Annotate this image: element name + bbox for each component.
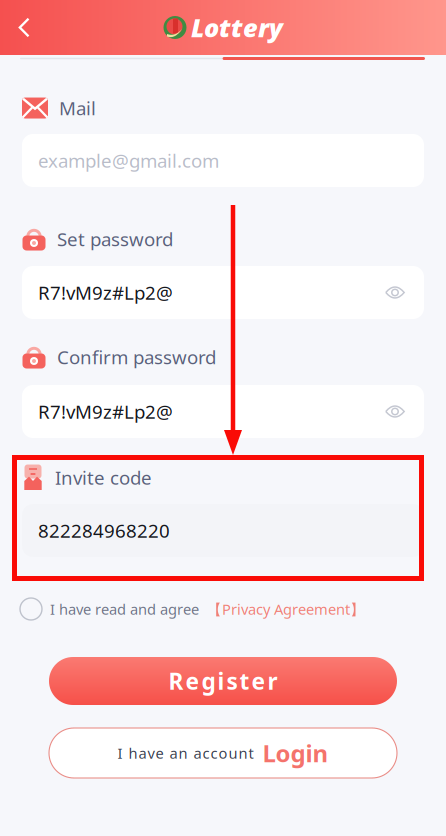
button[interactable]: I h a v e a n a c c o u n t	[0, 728, 446, 778]
button[interactable]: Show password	[380, 280, 410, 305]
staticText: R e g i s t e r	[168, 666, 277, 696]
staticText: R7!vM9z#Lp2@	[38, 399, 173, 424]
staticText: example@gmail.com	[38, 148, 219, 173]
staticText: Invite code	[55, 465, 152, 490]
staticText: 【Privacy Agreement】	[207, 599, 365, 619]
staticText: 822284968220	[38, 518, 170, 543]
staticText: Confirm password	[57, 345, 216, 369]
staticText: Login	[262, 737, 328, 769]
button[interactable]: R e g i s t e r	[0, 657, 446, 705]
staticText: Set password	[57, 227, 173, 251]
button[interactable]: I have read and agree	[0, 598, 446, 620]
staticText: Lottery	[191, 11, 283, 44]
button[interactable]: Show confirm password	[380, 399, 410, 424]
button[interactable]: Back	[0, 2, 44, 52]
staticText: I have read and agree	[50, 599, 199, 619]
staticText: Mail	[59, 96, 96, 120]
staticText: I h a v e a n a c c o u n t	[117, 743, 253, 763]
staticText: R7!vM9z#Lp2@	[38, 280, 173, 305]
